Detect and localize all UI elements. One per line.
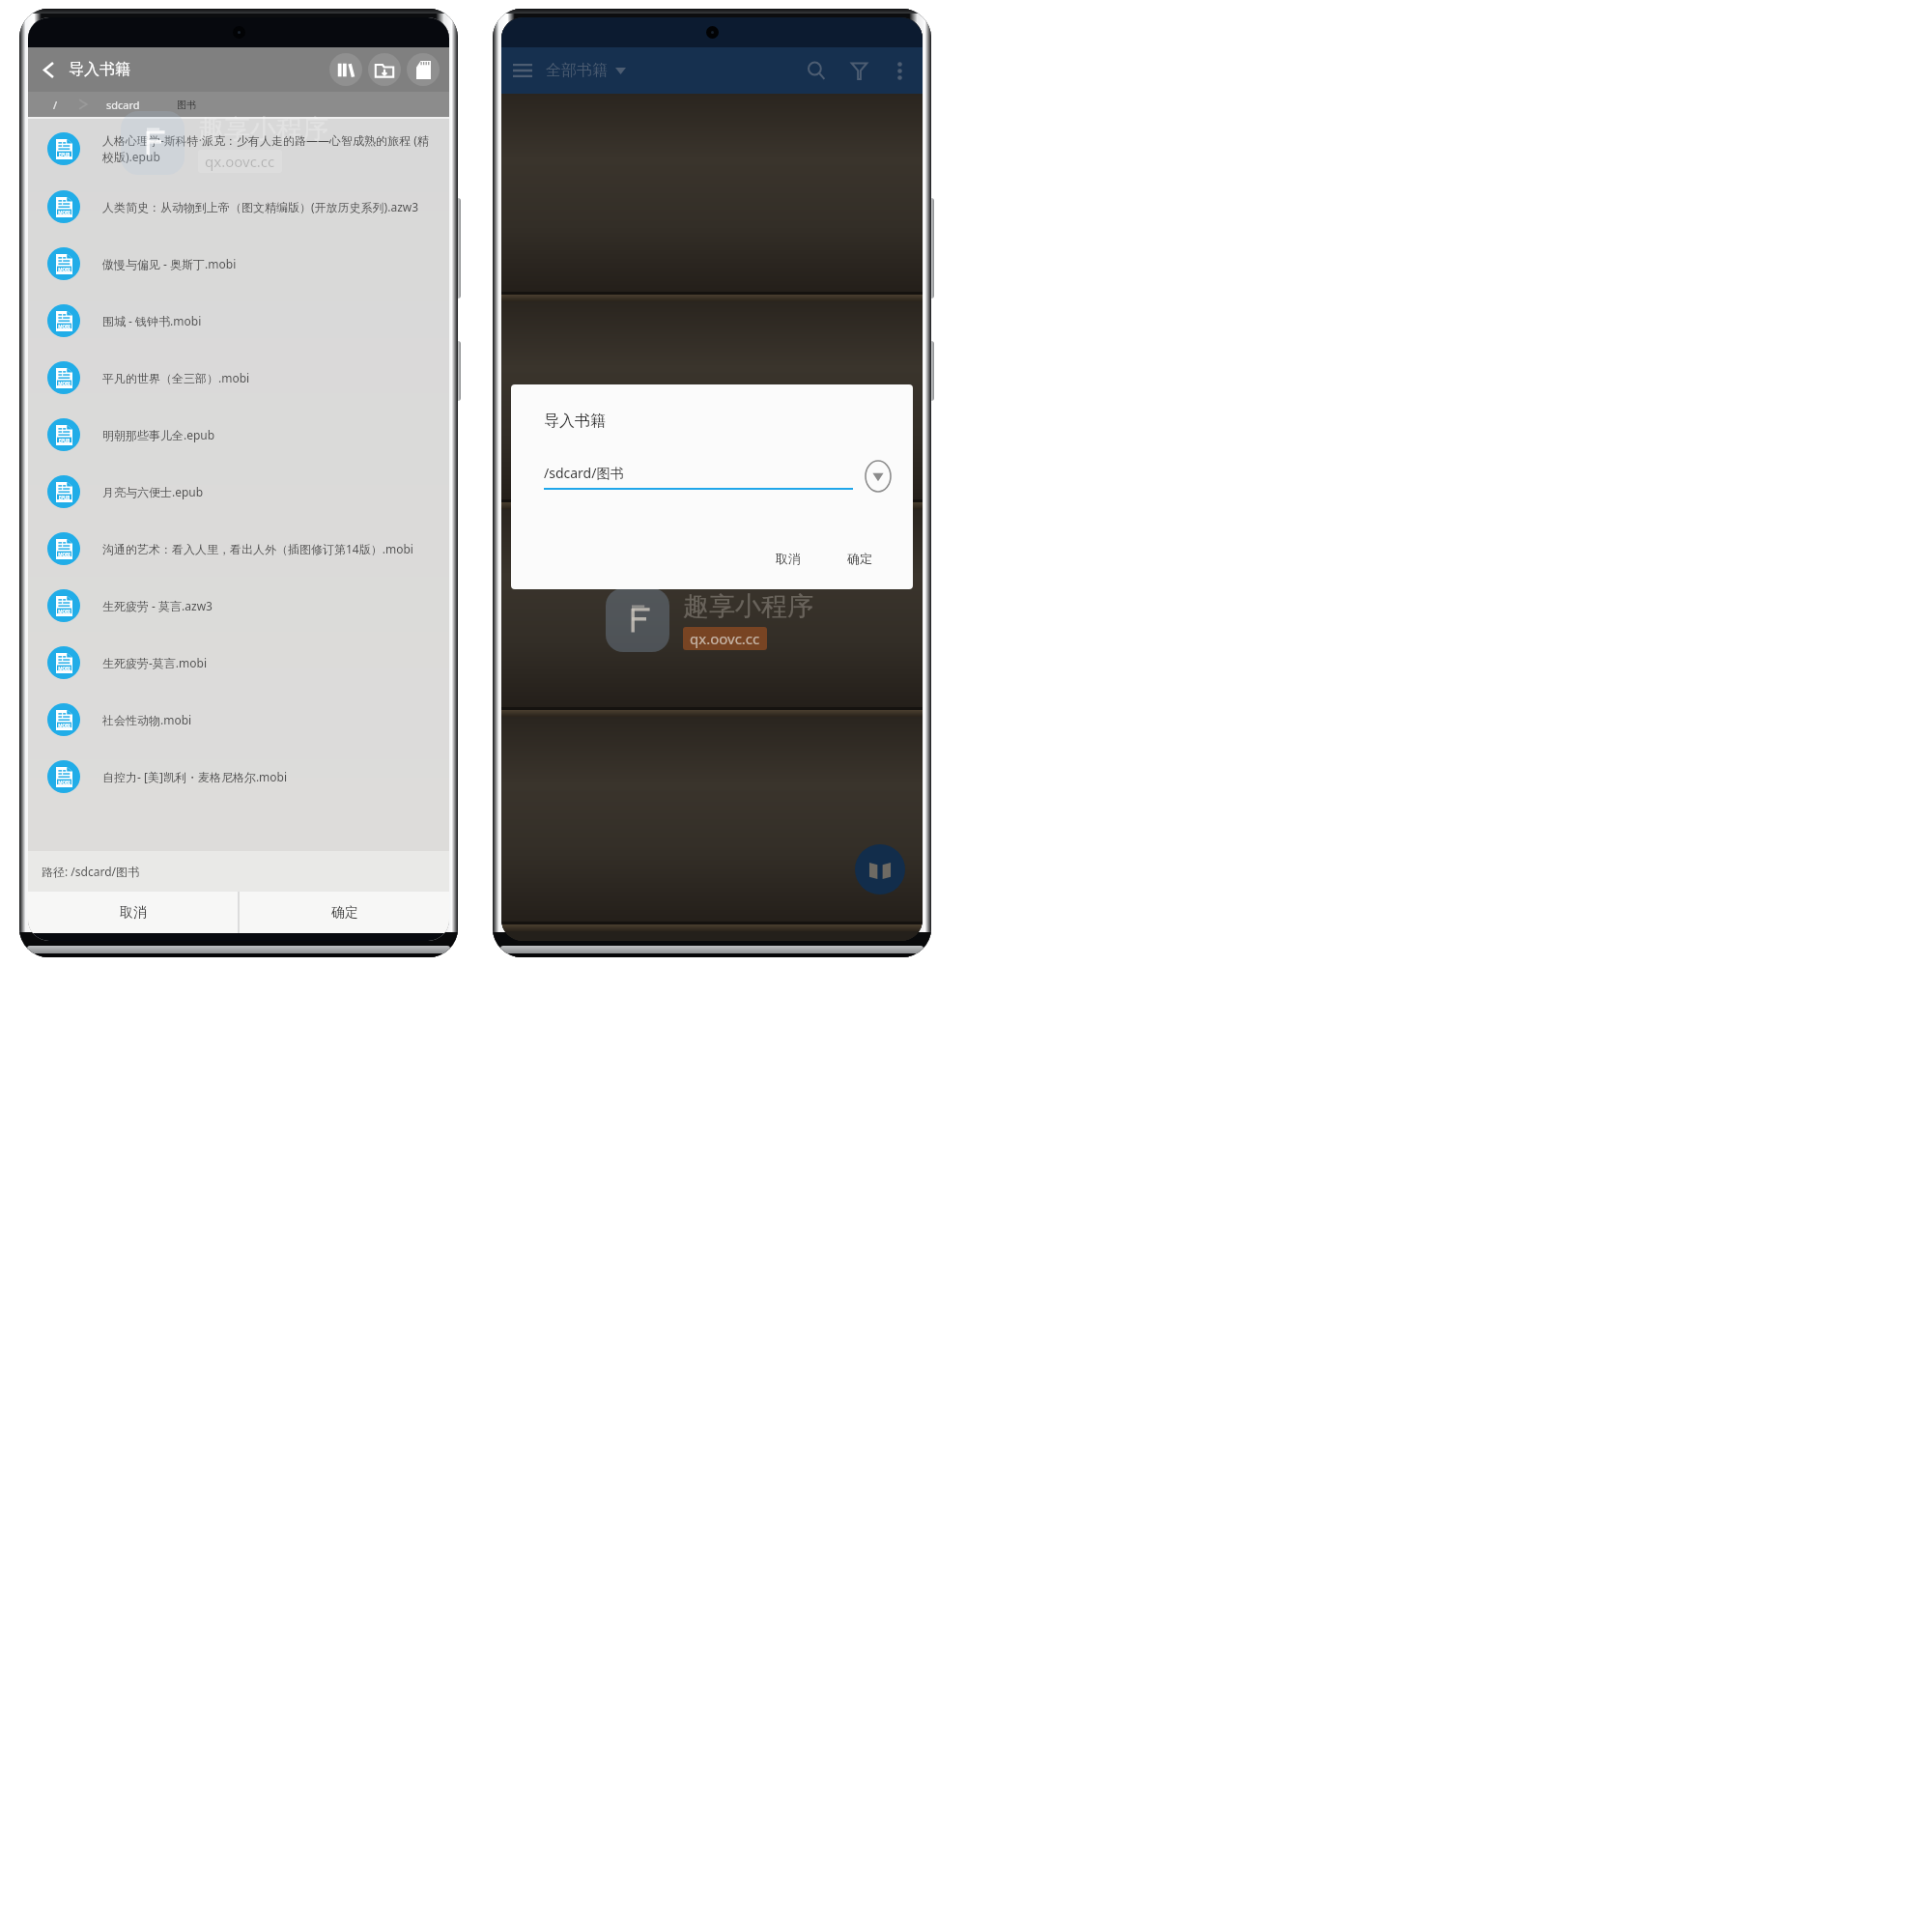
staticText: 人格心理学-斯科特·派克：少有人走的路——心智成熟的旅程 (精校版).epub — [102, 132, 436, 165]
staticText: MOBI — [56, 609, 72, 614]
staticText: 趣享小程序 — [198, 113, 328, 146]
button[interactable]: / — [53, 98, 58, 112]
staticText: 导入书籍 — [544, 412, 606, 431]
button[interactable]: MOBI — [28, 520, 449, 577]
button[interactable]: EPUB — [28, 406, 449, 463]
button[interactable]: Back — [28, 49, 69, 90]
staticText: MOBI — [56, 552, 72, 557]
button[interactable]: 取消 — [28, 892, 238, 933]
button[interactable]: Choose folder — [865, 460, 892, 493]
staticText: 趣享小程序 — [683, 590, 813, 623]
staticText: 自控力- [美]凯利・麦格尼格尔.mobi — [102, 769, 436, 784]
staticText: 导入书籍 — [69, 60, 130, 79]
staticText: MOBI — [56, 267, 72, 272]
button[interactable]: 取消 — [760, 543, 816, 574]
staticText: 全部书籍 — [546, 61, 608, 80]
staticText: 明朝那些事儿全.epub — [102, 427, 436, 442]
staticText: 生死疲劳-莫言.mobi — [102, 655, 436, 670]
staticText: 平凡的世界（全三部）.mobi — [102, 370, 436, 385]
staticText: qx.oovc.cc — [205, 152, 275, 171]
staticText: 确定 — [847, 551, 872, 566]
button[interactable]: sdcard — [106, 98, 140, 112]
staticText: 生死疲劳 - 莫言.azw3 — [102, 598, 436, 613]
staticText: MOBI — [56, 324, 72, 329]
staticText: 傲慢与偏见 - 奥斯丁.mobi — [102, 256, 436, 271]
staticText: qx.oovc.cc — [690, 629, 760, 648]
button[interactable]: EPUB — [28, 119, 449, 178]
button[interactable]: MOBI — [28, 292, 449, 349]
staticText: MOBI — [56, 723, 72, 728]
button[interactable]: EPUB — [28, 463, 449, 520]
staticText: MOBI — [56, 381, 72, 386]
staticText: MOBI — [56, 210, 72, 215]
button[interactable]: Menu — [501, 49, 544, 92]
button[interactable]: MOBI — [28, 235, 449, 292]
button[interactable]: MOBI — [28, 178, 449, 235]
staticText: 沟通的艺术：看入人里，看出人外（插图修订第14版）.mobi — [102, 541, 436, 556]
button[interactable]: MOBI — [28, 748, 449, 805]
button[interactable]: 图书 — [177, 99, 196, 111]
button[interactable]: 确定 — [832, 543, 888, 574]
button[interactable]: MOBI — [28, 634, 449, 691]
button[interactable]: More options — [880, 51, 919, 90]
staticText: 围城 - 钱钟书.mobi — [102, 313, 436, 328]
button[interactable]: MOBI — [28, 691, 449, 748]
staticText: EPUB — [56, 495, 72, 500]
staticText: 确定 — [331, 904, 358, 922]
button[interactable]: Download folder — [368, 53, 401, 86]
button[interactable]: SD card — [407, 53, 440, 86]
staticText: 取消 — [120, 904, 147, 922]
staticText: MOBI — [56, 780, 72, 785]
button[interactable]: Filter — [838, 49, 880, 92]
button[interactable]: Import books — [855, 844, 905, 895]
staticText: 取消 — [776, 551, 801, 566]
button[interactable]: /sdcard/图书 — [544, 464, 853, 490]
staticText: MOBI — [56, 666, 72, 671]
staticText: 社会性动物.mobi — [102, 712, 436, 727]
button[interactable]: MOBI — [28, 577, 449, 634]
button[interactable]: 确定 — [240, 892, 449, 933]
button[interactable]: MOBI — [28, 349, 449, 406]
staticText: 人类简史：从动物到上帝（图文精编版）(开放历史系列).azw3 — [102, 199, 436, 214]
staticText: 月亮与六便士.epub — [102, 484, 436, 499]
button[interactable]: 全部书籍 — [544, 55, 628, 86]
button[interactable]: Search — [795, 49, 838, 92]
staticText: EPUB — [56, 152, 72, 157]
staticText: EPUB — [56, 438, 72, 443]
staticText: /sdcard/图书 — [544, 464, 624, 482]
button[interactable]: Library — [329, 53, 362, 86]
staticText: 路径: /sdcard/图书 — [42, 864, 139, 879]
